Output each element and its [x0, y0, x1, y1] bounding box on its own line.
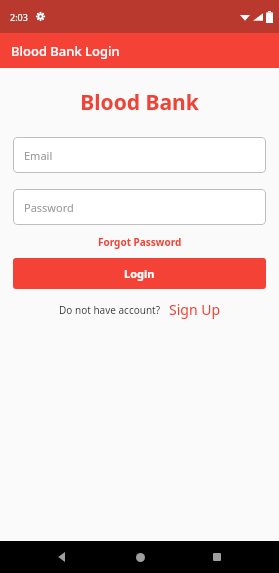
staticText: Email [24, 148, 53, 163]
staticText: Forgot Password [98, 235, 182, 249]
staticText: Password [24, 200, 74, 215]
staticText: Sign Up [169, 300, 221, 319]
button[interactable]: Recent apps [202, 542, 232, 572]
button[interactable]: Back [47, 542, 77, 572]
staticText: Do not have account? [59, 303, 161, 317]
button[interactable]: Email [13, 137, 266, 173]
staticText: Blood Bank Login [11, 42, 120, 60]
button[interactable]: Login [13, 258, 266, 289]
staticText: Blood Bank [0, 88, 279, 117]
staticText: Login [124, 266, 155, 281]
button[interactable]: Password [13, 189, 266, 225]
button[interactable]: Forgot Password [0, 235, 279, 249]
button[interactable]: Home [125, 542, 155, 572]
button[interactable]: Sign Up [169, 300, 221, 319]
staticText: 2:03 [10, 11, 28, 23]
